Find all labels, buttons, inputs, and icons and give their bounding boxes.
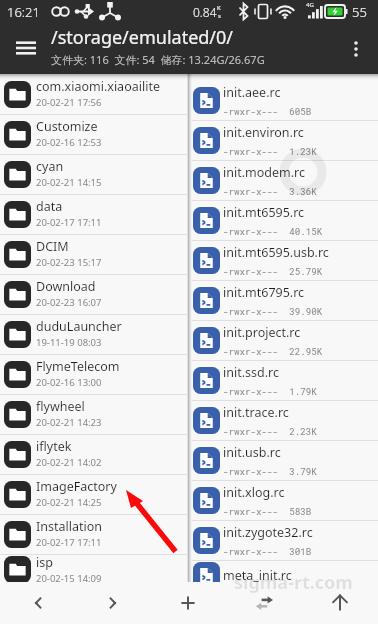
staticText: init.mt6595.usb.rc <box>223 244 329 261</box>
button[interactable]: Customize <box>0 115 187 155</box>
staticText: 19-11-19 08:03 <box>36 336 102 349</box>
button[interactable]: init.trace.rc <box>192 401 378 441</box>
staticText: 20-02-21 17:56 <box>36 96 102 109</box>
button[interactable]: init.aee.rc <box>192 81 378 121</box>
button[interactable]: cyan <box>0 155 187 195</box>
staticText: duduLauncher <box>36 318 122 335</box>
staticText: data <box>36 198 63 215</box>
button[interactable]: com.xiaomi.xiaoailite <box>0 75 187 115</box>
button[interactable]: New <box>150 582 226 624</box>
button[interactable]: init.environ.rc <box>192 121 378 161</box>
staticText: cyan <box>36 158 64 175</box>
staticText: -rwxr-x--- 3.36K <box>223 185 317 197</box>
button[interactable]: meta_init.rc <box>192 561 378 582</box>
staticText: init.project.rc <box>223 324 301 341</box>
staticText: -rwxr-x--- 301B <box>223 545 312 557</box>
staticText: flywheel <box>36 398 85 415</box>
staticText: /storage/emulated/0/ <box>51 25 234 50</box>
button[interactable]: FlymeTelecom <box>0 355 187 395</box>
staticText: init.trace.rc <box>223 404 289 421</box>
staticText: 20-02-21 14:15 <box>36 176 102 189</box>
button[interactable]: iflytek <box>0 435 187 475</box>
staticText: -rwxr-x--- 605B <box>223 105 312 117</box>
staticText: init.mt6595.rc <box>223 204 305 221</box>
button[interactable]: init.ssd.rc <box>192 361 378 401</box>
button[interactable]: init.project.rc <box>192 321 378 361</box>
staticText: -rwxr-x--- 39.90K <box>223 305 323 317</box>
staticText: 20-02-23 16:07 <box>36 296 102 309</box>
button[interactable]: init.xlog.rc <box>192 481 378 521</box>
button[interactable]: data <box>0 195 187 235</box>
staticText: 0.84 <box>193 4 217 20</box>
button[interactable]: init.mt6595.rc <box>192 201 378 241</box>
button[interactable]: flywheel <box>0 395 187 435</box>
button[interactable]: init.zygote32.rc <box>192 521 378 561</box>
staticText: com.xiaomi.xiaoailite <box>36 78 160 95</box>
staticText: init.usb.rc <box>223 444 281 461</box>
button[interactable]: Forward <box>75 582 150 624</box>
staticText: init.modem.rc <box>223 164 305 181</box>
staticText: 20-02-16 12:53 <box>36 136 102 149</box>
button[interactable]: More options <box>334 24 378 74</box>
staticText: init.mt6795.rc <box>223 284 305 301</box>
button[interactable]: Up <box>302 582 378 624</box>
staticText: -rwxr-x--- 22.95K <box>223 345 323 357</box>
staticText: init.ssd.rc <box>223 364 279 381</box>
staticText: -rwxr-x--- 1.79K <box>223 385 317 397</box>
button[interactable]: init.modem.rc <box>192 161 378 201</box>
button[interactable]: isp <box>0 555 187 582</box>
staticText: init.zygote32.rc <box>223 524 313 541</box>
button[interactable]: init.mt6595.usb.rc <box>192 241 378 281</box>
button[interactable]: Back <box>0 582 75 624</box>
button[interactable]: DCIM <box>0 235 187 275</box>
staticText: init.environ.rc <box>223 124 304 141</box>
staticText: init.xlog.rc <box>223 484 285 501</box>
staticText: 4G <box>306 1 314 9</box>
staticText: 55 <box>352 3 367 21</box>
staticText: Customize <box>36 118 98 135</box>
staticText: 16:21 <box>7 3 40 21</box>
staticText: isp <box>36 554 53 571</box>
staticText: -rwxr-x--- 1.23K <box>223 145 317 157</box>
staticText: 20-02-15 14:09 <box>36 572 102 582</box>
button[interactable]: Installation <box>0 515 187 555</box>
staticText: -rwxr-x--- 2.23K <box>223 425 317 437</box>
staticText: init.aee.rc <box>223 84 281 101</box>
staticText: 20-02-21 14:02 <box>36 456 102 469</box>
staticText: 文件夹: 116 文件: 54 储存: 13.24G/26.67G <box>51 52 265 67</box>
staticText: 20-02-16 13:00 <box>36 376 102 389</box>
staticText: Download <box>36 278 96 295</box>
button[interactable]: init.mt6795.rc <box>192 281 378 321</box>
staticText: meta_init.rc <box>223 567 292 582</box>
staticText: sigma-rt.com <box>234 570 353 595</box>
button[interactable]: init.usb.rc <box>192 441 378 481</box>
staticText: 20-02-23 15:17 <box>36 256 102 269</box>
staticText: -rwxr-x--- 583B <box>223 505 312 517</box>
button[interactable]: ImageFactory <box>0 475 187 515</box>
staticText: 20-02-17 17:11 <box>36 216 102 229</box>
staticText: -rwxr-x--- 25.79K <box>223 265 323 277</box>
button[interactable]: duduLauncher <box>0 315 187 355</box>
staticText: ImageFactory <box>36 478 117 495</box>
staticText: s <box>218 12 221 20</box>
button[interactable]: Open navigation menu <box>0 24 52 74</box>
staticText: 20-02-17 17:11 <box>36 536 102 549</box>
button[interactable]: Transfer <box>226 582 302 624</box>
staticText: DCIM <box>36 238 69 255</box>
staticText: -rwxr-x--- 3.79K <box>223 465 317 477</box>
staticText: 20-02-21 14:25 <box>36 496 102 509</box>
staticText: -rwxr-x--- 40.15K <box>223 225 323 237</box>
staticText: iflytek <box>36 438 72 455</box>
button[interactable]: Download <box>0 275 187 315</box>
staticText: Installation <box>36 518 102 535</box>
staticText: K <box>217 4 221 12</box>
staticText: 20-02-21 14:23 <box>36 416 102 429</box>
staticText: FlymeTelecom <box>36 358 120 375</box>
